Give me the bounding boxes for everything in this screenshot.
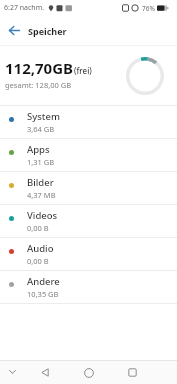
staticText: Andere bbox=[27, 275, 60, 288]
staticText: 3,64 GB bbox=[27, 124, 55, 134]
button[interactable]: Bilder bbox=[0, 172, 177, 204]
staticText: System bbox=[27, 110, 60, 123]
button[interactable] bbox=[6, 366, 18, 378]
button[interactable] bbox=[0, 16, 28, 45]
staticText: Bilder bbox=[27, 176, 54, 189]
staticText: Speicher bbox=[28, 25, 67, 37]
button[interactable] bbox=[37, 365, 52, 380]
button[interactable]: Audio bbox=[0, 238, 177, 270]
staticText: 1,31 GB bbox=[27, 157, 55, 167]
staticText: 10,35 GB bbox=[27, 289, 59, 299]
staticText: 112,70GB bbox=[5, 58, 74, 78]
staticText: Audio bbox=[27, 242, 54, 255]
staticText: Apps bbox=[27, 143, 50, 156]
staticText: 0,00 B bbox=[27, 223, 49, 233]
staticText: 0,00 B bbox=[27, 256, 49, 266]
staticText: 76% bbox=[142, 4, 155, 13]
button[interactable]: Apps bbox=[0, 139, 177, 171]
button[interactable]: Andere bbox=[0, 271, 177, 303]
button[interactable] bbox=[81, 365, 96, 380]
button[interactable]: System bbox=[0, 106, 177, 138]
staticText: 4,37 MB bbox=[27, 190, 56, 200]
staticText: 6:27 nachm. bbox=[4, 3, 45, 13]
staticText: Videos bbox=[27, 209, 58, 222]
staticText: gesamt: 128,00 GB bbox=[5, 80, 72, 90]
staticText: (frei) bbox=[74, 65, 92, 76]
button[interactable] bbox=[125, 365, 140, 380]
button[interactable]: Videos bbox=[0, 205, 177, 237]
